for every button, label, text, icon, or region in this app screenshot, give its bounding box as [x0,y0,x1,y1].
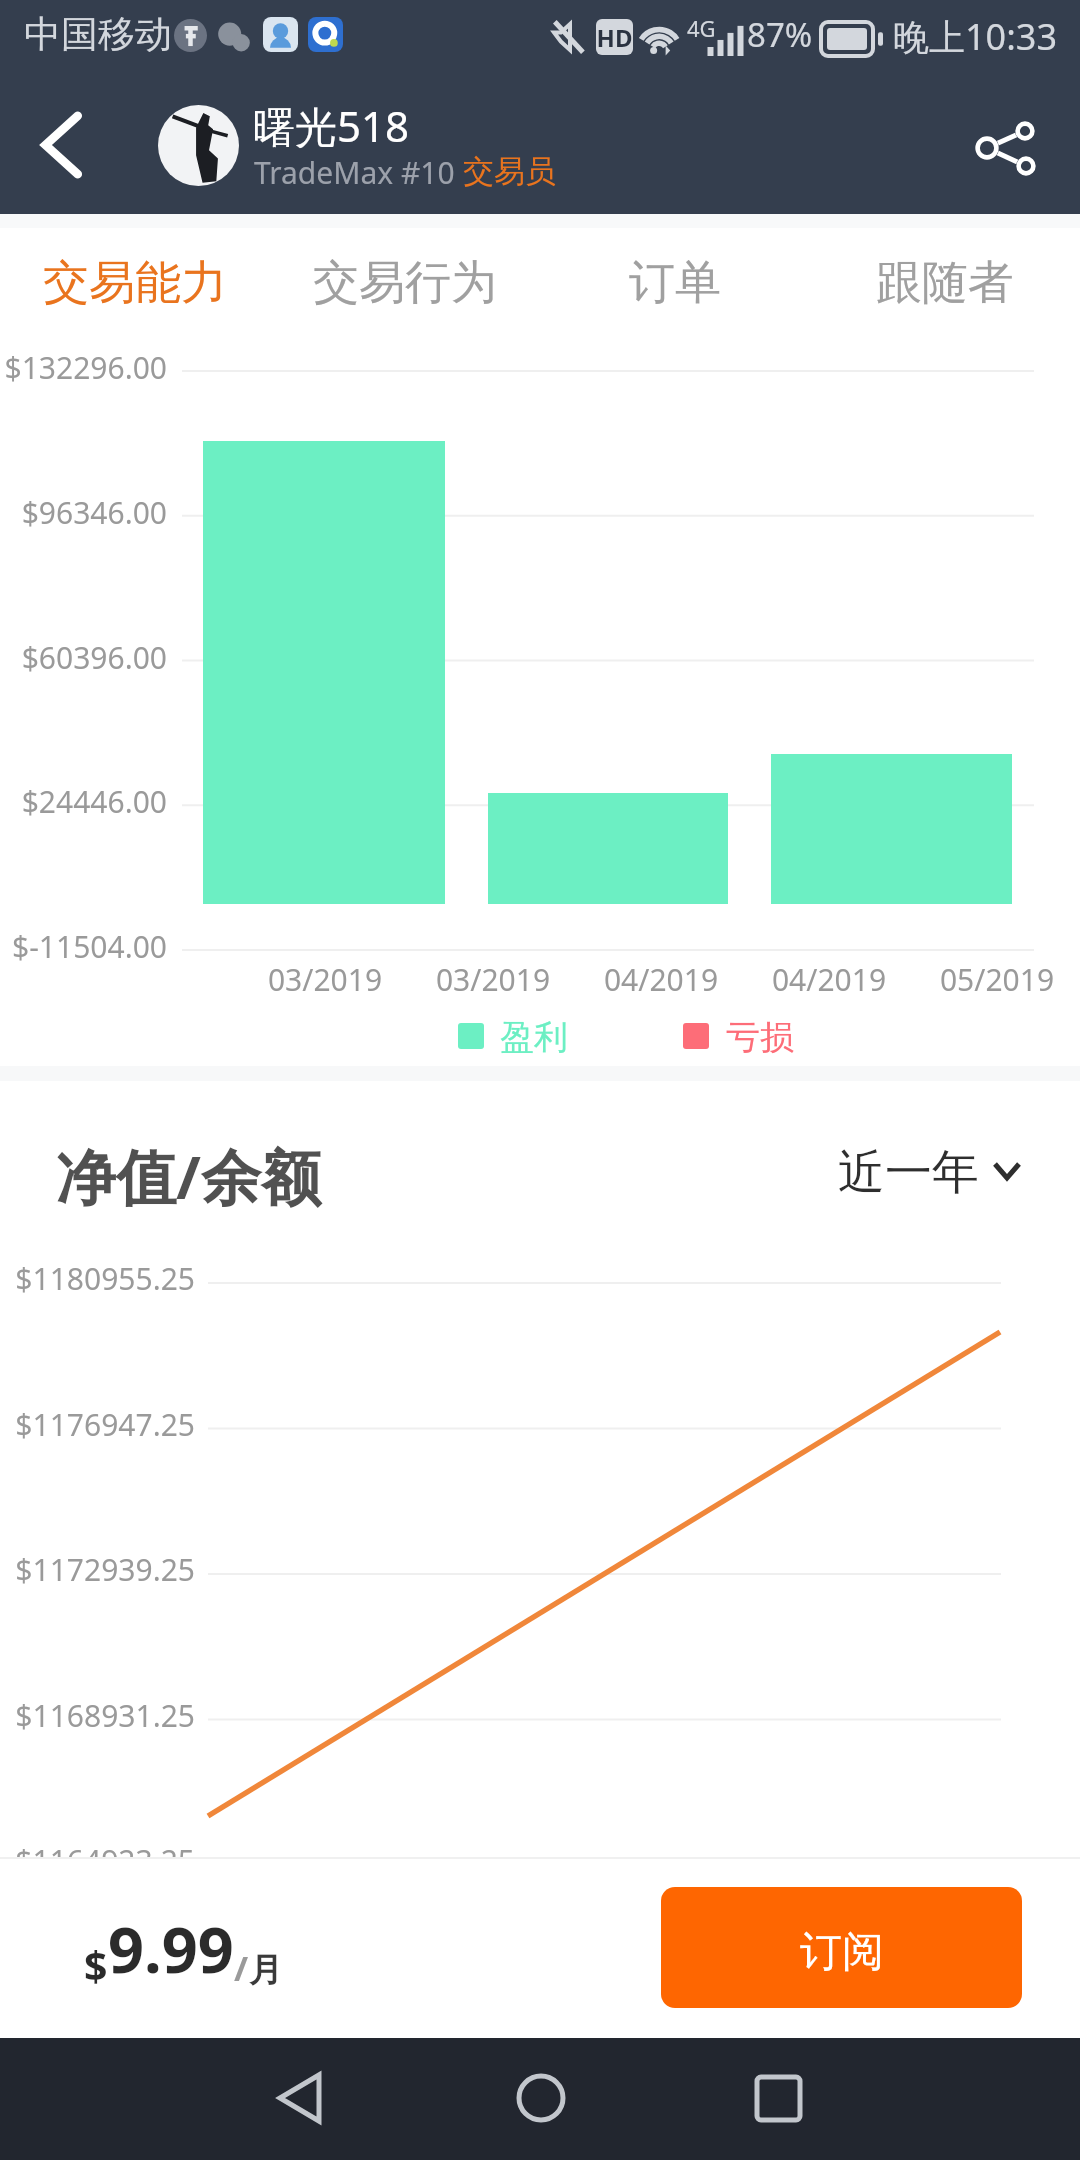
staticText: 04/2019 [561,959,761,1000]
staticText: 交易行为 [313,254,497,312]
button[interactable]: 订阅 [661,1887,1022,2008]
button[interactable]: 订单 [540,228,810,338]
staticText: 9.99 [108,1906,234,1992]
button[interactable]: Back [10,80,120,214]
staticText: 03/2019 [225,959,425,1000]
staticText: 净值/余额 [56,1135,321,1217]
staticText: 盈利 [500,1016,568,1059]
staticText: 亏损 [726,1016,794,1059]
staticText: 近一年 [838,1143,979,1202]
staticText: 87% [747,12,813,57]
staticText: 订阅 [800,1926,884,1979]
staticText: 跟随者 [876,254,1014,312]
staticText: $-11504.00 [0,926,167,967]
button[interactable]: Back [240,2038,360,2160]
staticText: 4G [687,13,716,43]
staticText: $ [84,1937,108,1993]
staticText: 03/2019 [393,959,593,1000]
staticText: 月 [249,1949,282,1991]
button[interactable]: 交易行为 [270,228,540,338]
staticText: HD [596,21,633,54]
button[interactable]: Recents [720,2038,840,2160]
staticText: 曙光518 [253,97,410,154]
button[interactable]: 跟随者 [810,228,1080,338]
staticText: 04/2019 [729,959,929,1000]
button[interactable]: Share [950,80,1070,214]
staticText: $132296.00 [0,347,167,388]
staticText: / [234,1945,249,1991]
staticText: 晚上10:33 [893,12,1058,61]
staticText: $1172939.25 [0,1549,195,1590]
staticText: 订单 [629,254,721,312]
button[interactable]: 交易能力 [0,228,270,338]
staticText: 交易能力 [43,254,227,312]
staticText: 交易员 [463,152,556,191]
button[interactable]: Home [480,2038,600,2160]
staticText: 中国移动 [24,11,172,58]
staticText: $1176947.25 [0,1404,195,1445]
staticText: $1180955.25 [0,1258,195,1299]
staticText: $1168931.25 [0,1695,195,1736]
staticText: 05/2019 [897,959,1080,1000]
staticText: $1164923.25 [0,1840,195,1858]
button[interactable]: 近一年 [838,1143,1019,1202]
staticText: TradeMax #10 [254,152,463,193]
staticText: $96346.00 [0,492,167,533]
staticText: $60396.00 [0,637,167,678]
staticText: $24446.00 [0,781,167,822]
